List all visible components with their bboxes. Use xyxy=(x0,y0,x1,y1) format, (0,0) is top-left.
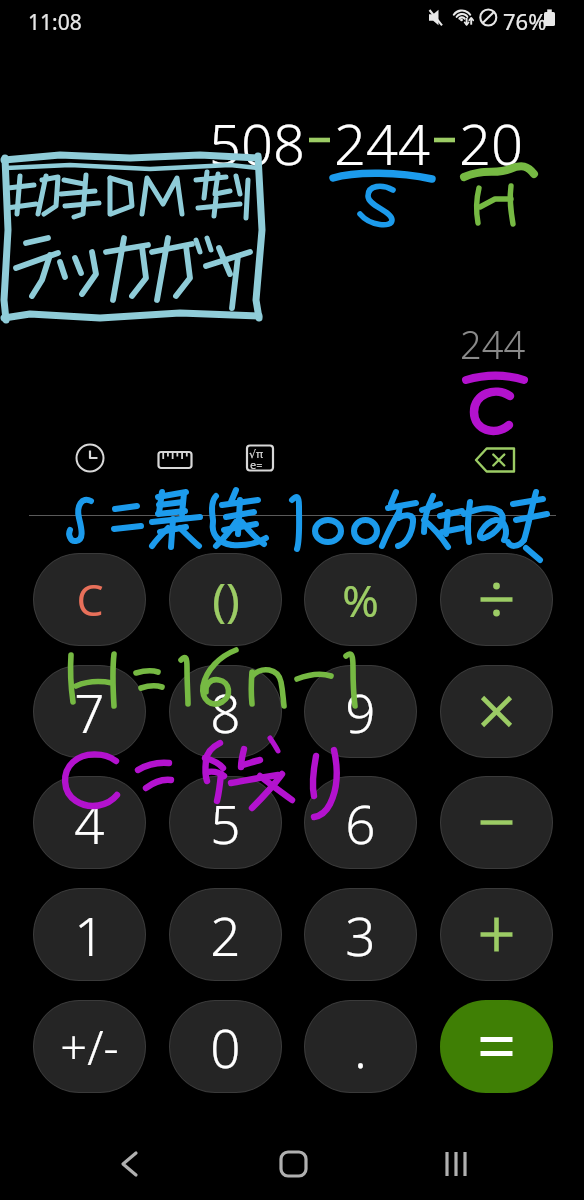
button[interactable]: Recent apps xyxy=(431,1129,483,1181)
staticText: 7 xyxy=(74,676,105,748)
button[interactable]: 8 xyxy=(169,665,282,758)
staticText: 20 xyxy=(459,105,523,175)
button[interactable]: 9 xyxy=(304,665,417,758)
staticText: 76% xyxy=(503,6,547,36)
button[interactable]: 0 xyxy=(169,1000,282,1093)
staticText: 4 xyxy=(74,787,105,859)
button[interactable]: 1 xyxy=(33,888,146,981)
button[interactable]: Equals xyxy=(440,1000,553,1093)
button[interactable]: % xyxy=(304,553,417,646)
staticText: 9 xyxy=(345,676,376,748)
button[interactable]: Add xyxy=(440,888,553,981)
staticText: 8 xyxy=(210,676,241,748)
staticText: 5 xyxy=(210,787,241,859)
button[interactable]: 4 xyxy=(33,776,146,869)
staticText: +/- xyxy=(60,1015,119,1079)
button[interactable]: +/- xyxy=(33,1000,146,1093)
button[interactable]: Back xyxy=(100,1129,152,1181)
button[interactable]: Divide xyxy=(440,553,553,646)
button[interactable]: History xyxy=(66,434,114,482)
button[interactable]: 2 xyxy=(169,888,282,981)
button[interactable]: 3 xyxy=(304,888,417,981)
button[interactable]: Multiply xyxy=(440,665,553,758)
staticText: 2 xyxy=(210,899,241,971)
button[interactable]: () xyxy=(169,553,282,646)
staticText: √π xyxy=(249,446,264,461)
staticText: 6 xyxy=(345,787,376,859)
staticText: 508 xyxy=(209,105,305,175)
staticText: e= xyxy=(250,457,263,472)
button[interactable]: Scientific calculator xyxy=(236,434,284,482)
button[interactable]: Backspace xyxy=(472,434,520,482)
button[interactable]: . xyxy=(304,1000,417,1093)
button[interactable]: Home xyxy=(268,1129,320,1181)
staticText: C xyxy=(76,570,104,629)
staticText: 11:08 xyxy=(28,8,82,37)
button[interactable]: C xyxy=(33,553,146,646)
staticText: 244 xyxy=(460,318,526,362)
button[interactable]: 7 xyxy=(33,665,146,758)
staticText: % xyxy=(342,570,379,630)
button[interactable]: Subtract xyxy=(440,776,553,869)
staticText: 1 xyxy=(74,899,105,971)
staticText: . xyxy=(354,1011,367,1083)
staticText: 3 xyxy=(345,899,376,971)
button[interactable]: Unit converter xyxy=(151,434,199,482)
staticText: 0 xyxy=(210,1011,241,1083)
staticText: () xyxy=(212,568,240,631)
button[interactable]: 6 xyxy=(304,776,417,869)
staticText: 244 xyxy=(334,105,430,175)
button[interactable]: 5 xyxy=(169,776,282,869)
